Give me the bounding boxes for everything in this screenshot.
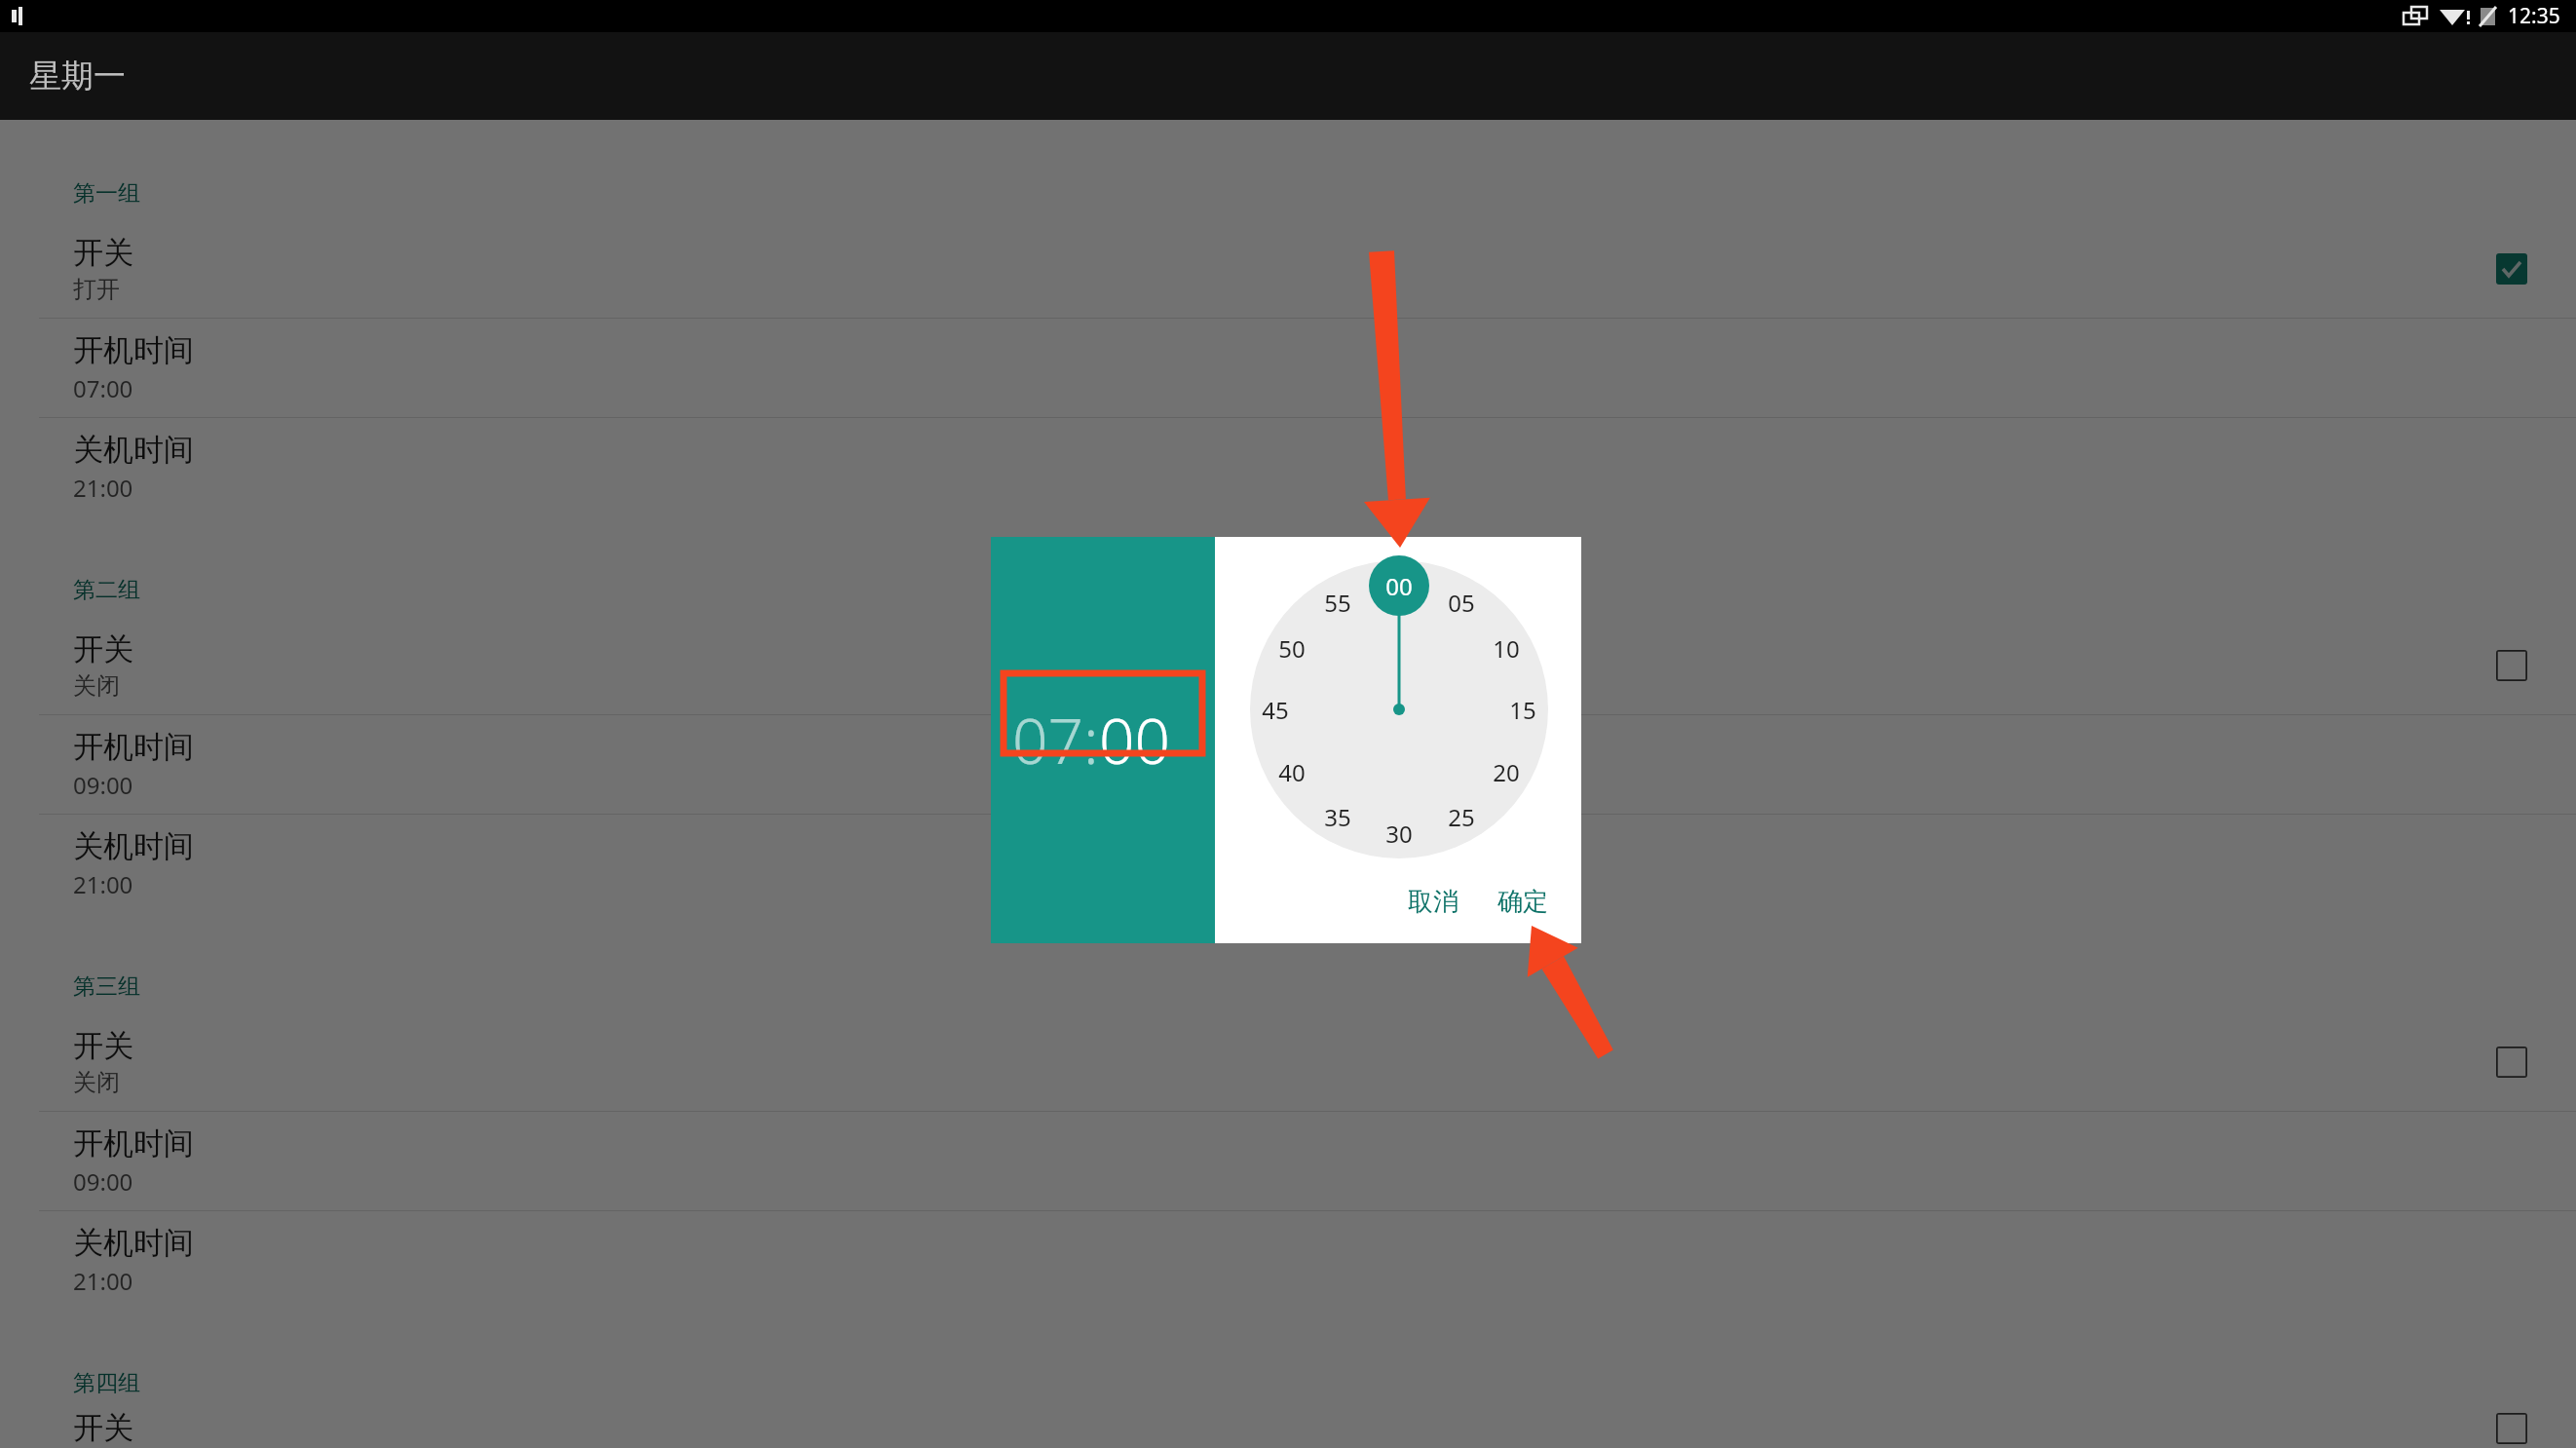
staticText: 35 bbox=[1324, 801, 1351, 833]
staticText: 打开 bbox=[73, 275, 120, 304]
staticText: 第一组 bbox=[73, 179, 140, 208]
staticText: 开机时间 bbox=[73, 1124, 194, 1162]
button[interactable]: 开机时间 bbox=[0, 715, 2576, 814]
staticText: 21:00 bbox=[73, 1265, 133, 1297]
staticText: 关机时间 bbox=[73, 827, 194, 865]
button[interactable]: 开机时间 bbox=[0, 319, 2576, 417]
button[interactable]: Checked bbox=[2496, 253, 2527, 285]
staticText: 50 bbox=[1278, 632, 1306, 665]
staticText: 05 bbox=[1448, 587, 1475, 619]
staticText: 07:00 bbox=[73, 372, 133, 404]
staticText: 15 bbox=[1509, 694, 1536, 726]
staticText: 第二组 bbox=[73, 576, 140, 604]
staticText: 25 bbox=[1448, 801, 1475, 833]
staticText: 12:35 bbox=[2508, 2, 2560, 30]
staticText: 00 bbox=[1385, 570, 1413, 602]
staticText: 10 bbox=[1493, 632, 1520, 665]
button[interactable]: 取消 bbox=[1392, 876, 1474, 928]
staticText: 07: bbox=[1012, 698, 1099, 782]
staticText: 关闭 bbox=[73, 671, 120, 701]
button[interactable]: Unchecked bbox=[2496, 1047, 2527, 1078]
staticText: 第四组 bbox=[73, 1369, 140, 1397]
staticText: 星期一 bbox=[29, 56, 126, 96]
button[interactable]: Unchecked bbox=[2496, 650, 2527, 681]
staticText: 关机时间 bbox=[73, 431, 194, 469]
button[interactable]: 开关 bbox=[0, 1409, 2576, 1448]
button[interactable]: 07: bbox=[991, 537, 1215, 943]
staticText: 09:00 bbox=[73, 1165, 133, 1198]
button[interactable]: 开关 bbox=[0, 219, 2576, 318]
button[interactable]: 确定 bbox=[1482, 876, 1564, 928]
staticText: 21:00 bbox=[73, 868, 133, 900]
staticText: 21:00 bbox=[73, 472, 133, 504]
button[interactable]: 关机时间 bbox=[0, 418, 2576, 516]
button[interactable]: 开关 bbox=[0, 1012, 2576, 1111]
staticText: 确定 bbox=[1497, 886, 1548, 918]
button[interactable]: 关机时间 bbox=[0, 815, 2576, 913]
staticText: 开机时间 bbox=[73, 331, 194, 369]
staticText: 开机时间 bbox=[73, 728, 194, 766]
staticText: 关闭 bbox=[73, 1068, 120, 1097]
button[interactable]: 开关 bbox=[0, 616, 2576, 714]
staticText: 取消 bbox=[1408, 886, 1458, 918]
staticText: 开关 bbox=[73, 1409, 133, 1447]
staticText: 开关 bbox=[73, 1027, 133, 1065]
staticText: 40 bbox=[1278, 756, 1306, 788]
button[interactable]: Unchecked bbox=[2496, 1413, 2527, 1444]
staticText: 45 bbox=[1262, 694, 1289, 726]
staticText: 开关 bbox=[73, 234, 133, 272]
staticText: 30 bbox=[1385, 818, 1413, 850]
button[interactable]: 关机时间 bbox=[0, 1211, 2576, 1310]
button[interactable]: 开机时间 bbox=[0, 1112, 2576, 1210]
staticText: 00 bbox=[1099, 698, 1171, 782]
staticText: 55 bbox=[1324, 587, 1351, 619]
staticText: 第三组 bbox=[73, 972, 140, 1001]
staticText: 开关 bbox=[73, 630, 133, 668]
staticText: 09:00 bbox=[73, 769, 133, 801]
staticText: 关机时间 bbox=[73, 1224, 194, 1262]
staticText: 20 bbox=[1493, 756, 1520, 788]
